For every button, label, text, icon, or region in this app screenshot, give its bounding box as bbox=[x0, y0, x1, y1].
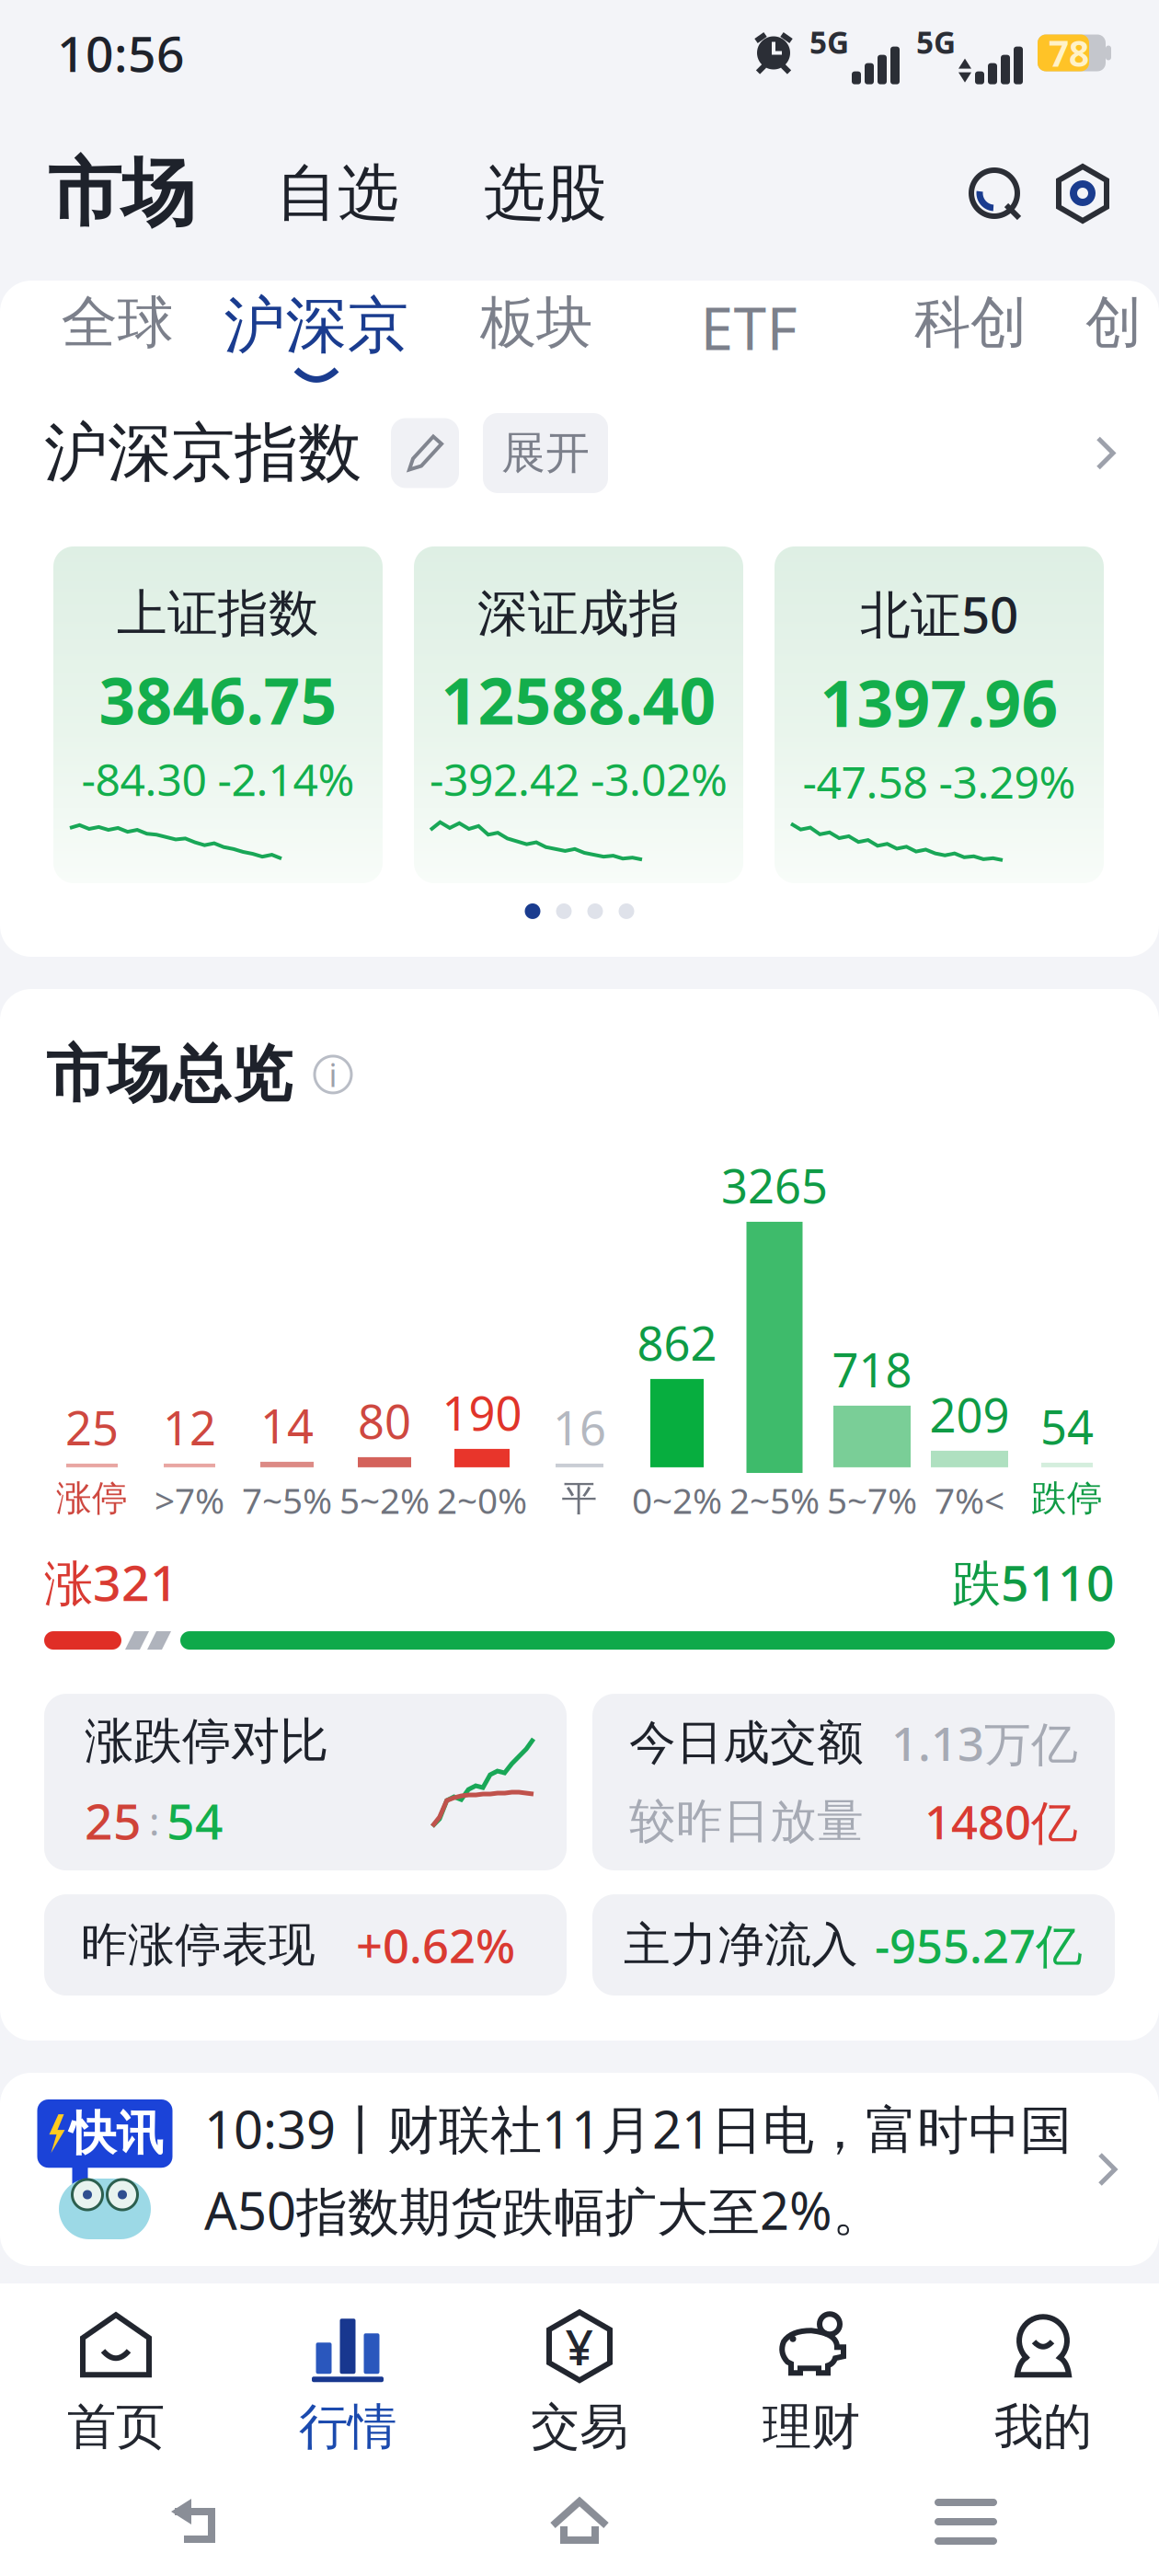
staticText: 25 bbox=[85, 1788, 142, 1853]
staticText: 较昨日放量 bbox=[629, 1793, 864, 1850]
staticText: -955.27亿 bbox=[875, 1914, 1083, 1976]
staticText: 12588.40 bbox=[441, 657, 716, 742]
staticText: 5~2% bbox=[339, 1477, 430, 1524]
staticText: ¥ bbox=[565, 2314, 594, 2379]
staticText: 交易 bbox=[531, 2397, 628, 2457]
staticText: 展开 bbox=[501, 426, 590, 480]
staticText: 7%< bbox=[935, 1477, 1004, 1524]
staticText: 7~5% bbox=[242, 1477, 332, 1524]
staticText: 3265 bbox=[721, 1154, 828, 1216]
button[interactable]: 搜索 bbox=[966, 165, 1023, 222]
staticText: -47.58 -3.29% bbox=[803, 752, 1076, 811]
staticText: 北证50 bbox=[860, 580, 1018, 647]
staticText: 上证指数 bbox=[117, 583, 319, 645]
staticText: i bbox=[329, 1053, 337, 1096]
button[interactable]: 说明 bbox=[293, 1056, 351, 1093]
staticText: 涨跌停对比 bbox=[85, 1711, 328, 1771]
staticText: 跌5110 bbox=[952, 1549, 1115, 1615]
button[interactable]: 选股 bbox=[399, 156, 607, 231]
staticText: 平 bbox=[562, 1477, 597, 1520]
staticText: +0.62% bbox=[356, 1914, 515, 1976]
staticText: 10:56 bbox=[57, 20, 185, 85]
staticText: 板块 bbox=[480, 288, 592, 357]
button[interactable]: 首页 bbox=[0, 2299, 232, 2466]
button[interactable]: 我的 bbox=[927, 2299, 1159, 2466]
staticText: -392.42 -3.02% bbox=[430, 750, 728, 808]
staticText: ETF bbox=[700, 288, 797, 366]
staticText: 5G bbox=[809, 22, 849, 62]
staticText: 1480亿 bbox=[924, 1790, 1078, 1852]
button[interactable]: 自选 bbox=[195, 156, 399, 231]
button[interactable]: 市场 bbox=[48, 148, 195, 238]
staticText: 80 bbox=[358, 1390, 411, 1452]
staticText: 16 bbox=[553, 1396, 606, 1458]
staticText: 190 bbox=[442, 1381, 522, 1443]
staticText: 1397.96 bbox=[820, 660, 1058, 745]
button[interactable]: ¥ bbox=[464, 2299, 695, 2466]
staticText: : bbox=[149, 1794, 159, 1847]
staticText: 选股 bbox=[484, 156, 607, 231]
staticText: 行情 bbox=[299, 2397, 396, 2457]
staticText: 科创 bbox=[914, 288, 1027, 357]
staticText: 54 bbox=[166, 1788, 224, 1853]
button[interactable]: 创 bbox=[1085, 288, 1159, 357]
staticText: 昨涨停表现 bbox=[81, 1916, 316, 1973]
staticText: 全球 bbox=[61, 288, 173, 357]
staticText: 沪深京 bbox=[224, 288, 409, 363]
staticText: 理财 bbox=[763, 2397, 860, 2457]
staticText: 市场 bbox=[48, 148, 195, 238]
button[interactable]: 北证50 bbox=[775, 546, 1104, 883]
button[interactable]: 科创 bbox=[855, 288, 1085, 357]
staticText: 5~7% bbox=[827, 1477, 917, 1524]
button[interactable]: 深证成指 bbox=[414, 546, 743, 883]
staticText: -84.30 -2.14% bbox=[81, 750, 355, 808]
staticText: 2~5% bbox=[729, 1477, 820, 1524]
staticText: 718 bbox=[832, 1338, 912, 1400]
staticText: 我的 bbox=[994, 2397, 1092, 2457]
staticText: 涨321 bbox=[44, 1549, 178, 1615]
staticText: 主力净流入 bbox=[624, 1916, 858, 1973]
button[interactable]: 上证指数 bbox=[53, 546, 383, 883]
button[interactable]: 编辑 bbox=[361, 418, 459, 488]
staticText: 54 bbox=[1040, 1395, 1094, 1457]
staticText: 沪深京指数 bbox=[44, 414, 361, 492]
button[interactable]: 全球 bbox=[32, 288, 202, 357]
staticText: 78 bbox=[1049, 29, 1089, 76]
staticText: 跌停 bbox=[1031, 1477, 1103, 1520]
button[interactable]: 最近任务 bbox=[773, 2499, 1159, 2545]
staticText: 10:39丨财联社11月21日电，富时中国 bbox=[204, 2094, 1072, 2163]
button[interactable]: 设置 bbox=[1023, 165, 1111, 222]
staticText: 3846.75 bbox=[99, 657, 337, 742]
button[interactable]: 返回 bbox=[0, 2495, 386, 2548]
staticText: 25 bbox=[65, 1396, 119, 1458]
button[interactable]: 更多 bbox=[1093, 435, 1119, 471]
button[interactable]: 理财 bbox=[695, 2299, 927, 2466]
staticText: 创 bbox=[1085, 288, 1142, 357]
staticText: 0~2% bbox=[632, 1477, 722, 1524]
button[interactable]: 展开 bbox=[459, 413, 608, 493]
button[interactable]: ETF bbox=[642, 288, 855, 366]
button[interactable]: 主页 bbox=[386, 2496, 773, 2547]
button[interactable]: 沪深京 bbox=[202, 288, 430, 382]
staticText: 12 bbox=[163, 1396, 216, 1458]
staticText: 209 bbox=[929, 1383, 1010, 1445]
staticText: 14 bbox=[260, 1394, 314, 1456]
staticText: 自选 bbox=[276, 156, 399, 231]
staticText: 1.13万亿 bbox=[891, 1712, 1078, 1774]
staticText: 首页 bbox=[67, 2397, 165, 2457]
staticText: 862 bbox=[637, 1312, 717, 1373]
staticText: 2~0% bbox=[437, 1477, 527, 1524]
staticText: 今日成交额 bbox=[629, 1714, 864, 1771]
button[interactable]: 板块 bbox=[430, 288, 642, 357]
staticText: 涨停 bbox=[56, 1477, 128, 1520]
staticText: 市场总览 bbox=[46, 1037, 293, 1112]
staticText: >7% bbox=[155, 1477, 224, 1524]
staticText: 深证成指 bbox=[477, 583, 680, 645]
button[interactable]: 行情 bbox=[232, 2299, 464, 2466]
staticText: 快讯 bbox=[69, 2105, 163, 2162]
button[interactable]: 快讯 bbox=[0, 2073, 1159, 2266]
staticText: 5G bbox=[916, 22, 956, 62]
staticText: A50指数期货跌幅扩大至2%。 bbox=[204, 2176, 884, 2244]
